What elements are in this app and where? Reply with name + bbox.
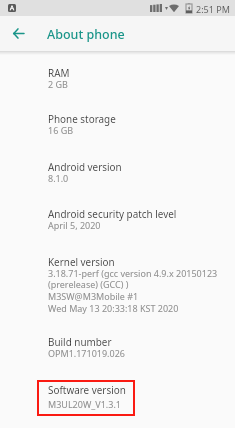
button[interactable]: Back	[6, 16, 30, 51]
staticText: Android security patch level	[48, 207, 177, 220]
button[interactable]: Android security patch level	[0, 204, 235, 250]
staticText: Android version	[48, 160, 122, 173]
button[interactable]: Android version	[0, 157, 235, 204]
staticText: 3.18.71-perf (gcc version 4.9.x 20150123…	[48, 267, 218, 315]
staticText: Software version	[48, 383, 126, 396]
staticText: M3UL20W_V1.3.1	[48, 398, 121, 410]
staticText: RAM	[48, 66, 70, 79]
button[interactable]: Software version	[37, 380, 135, 416]
staticText: Kernel version	[48, 255, 115, 268]
staticText: About phone	[47, 26, 125, 43]
staticText: 16 GB	[48, 124, 74, 136]
staticText: OPM1.171019.026	[48, 347, 125, 359]
staticText: 2:51 PM	[196, 3, 230, 15]
button[interactable]: Kernel version	[0, 252, 235, 336]
staticText: Build number	[48, 335, 112, 348]
button[interactable]: RAM	[0, 63, 235, 109]
staticText: 2 GB	[48, 78, 68, 90]
button[interactable]: Build number	[0, 332, 235, 376]
staticText: 8.1.0	[48, 172, 69, 184]
button[interactable]: Phone storage	[0, 109, 235, 157]
staticText: April 5, 2020	[48, 219, 101, 231]
staticText: Phone storage	[48, 112, 116, 125]
